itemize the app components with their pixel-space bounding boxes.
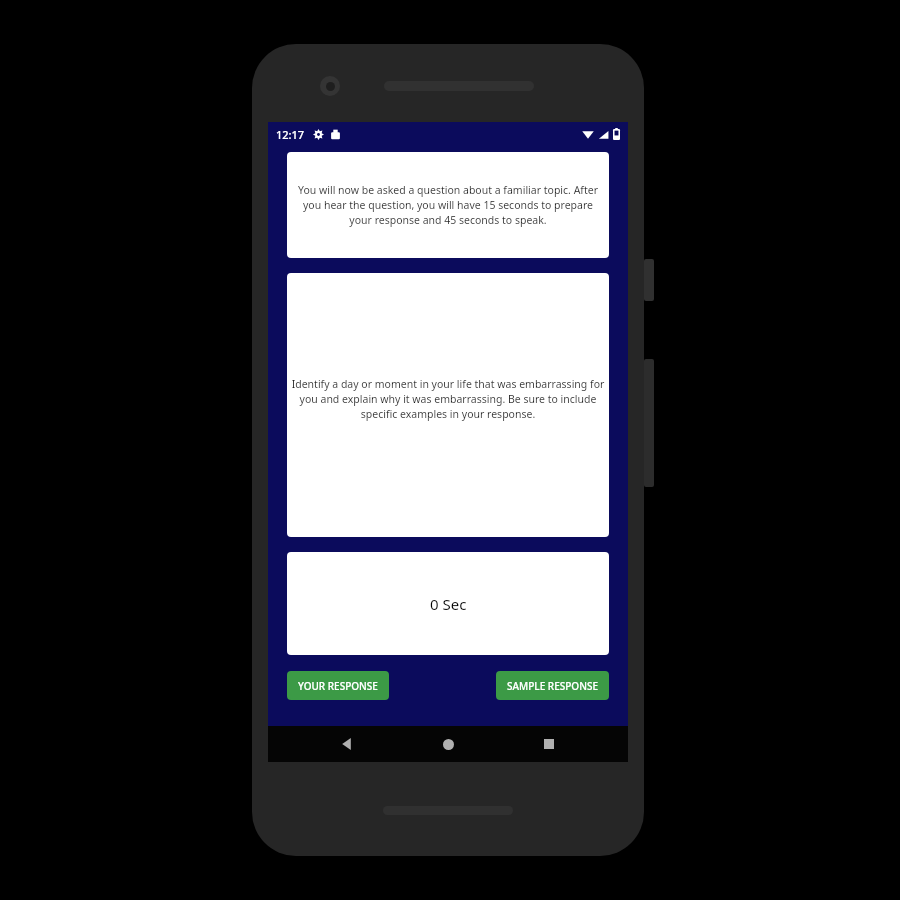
staticText: YOUR RESPONSE: [298, 679, 378, 693]
staticText: SAMPLE RESPONSE: [507, 679, 598, 693]
button[interactable]: Home: [426, 726, 470, 762]
button[interactable]: Back: [325, 726, 369, 762]
staticText: 12:17: [276, 127, 305, 142]
button[interactable]: 0 Sec: [287, 552, 609, 655]
staticText: You will now be asked a question about a…: [293, 183, 603, 227]
button[interactable]: Identify a day or moment in your life th…: [287, 273, 609, 537]
button[interactable]: You will now be asked a question about a…: [287, 152, 609, 258]
staticText: Identify a day or moment in your life th…: [291, 377, 605, 421]
staticText: 0 Sec: [430, 594, 467, 614]
button[interactable]: Recent apps: [527, 726, 571, 762]
button[interactable]: SAMPLE RESPONSE: [496, 671, 609, 700]
button[interactable]: YOUR RESPONSE: [287, 671, 389, 700]
